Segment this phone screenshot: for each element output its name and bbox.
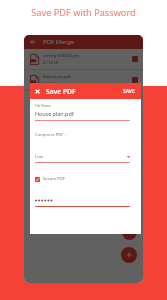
staticText: 41.74 kB — [43, 60, 59, 65]
staticText: Listing 900432.jpg — [43, 53, 79, 59]
staticText: Bathroom.pdf — [43, 74, 71, 80]
staticText: Secure PDF — [43, 176, 66, 182]
button[interactable]: SAVE — [122, 85, 136, 98]
staticText: Save PDF with Password — [0, 6, 167, 19]
button[interactable]: Listing 900432.jpg — [24, 49, 143, 69]
button[interactable]: Back — [29, 38, 37, 46]
staticText: PDF Merge — [43, 38, 75, 46]
button[interactable]: Secure PDF — [35, 175, 66, 183]
button[interactable]: Low — [35, 152, 130, 162]
button[interactable]: Close — [34, 88, 41, 95]
button[interactable]: Merge — [121, 247, 137, 263]
staticText: House plan.pdf — [35, 110, 74, 117]
staticText: Compress PDF : — [35, 132, 66, 138]
staticText: SAVE — [123, 88, 135, 95]
staticText: File Name — [35, 103, 51, 108]
staticText: Save PDF — [46, 87, 76, 96]
staticText: Low — [35, 154, 43, 160]
button[interactable]: Add file — [122, 225, 137, 240]
button[interactable]: Bathroom.pdf — [24, 70, 143, 90]
staticText: 13.2 kB — [43, 81, 57, 86]
